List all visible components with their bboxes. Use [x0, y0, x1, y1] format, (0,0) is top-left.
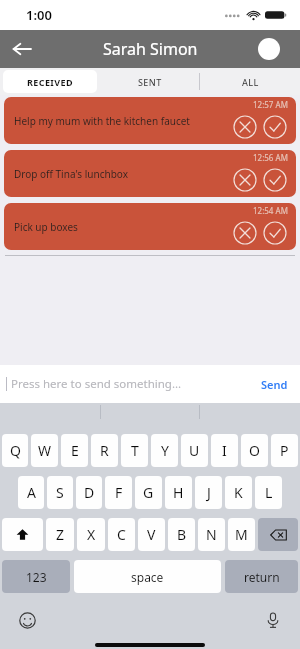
staticText: Q [10, 441, 21, 460]
staticText: B [177, 525, 187, 544]
staticText: C [117, 525, 126, 544]
staticText: ALL [242, 76, 259, 88]
staticText: T [131, 441, 139, 460]
button[interactable]: N [198, 518, 225, 551]
staticText: E [71, 441, 79, 460]
button[interactable]: Accept task [262, 167, 288, 193]
staticText: V [147, 525, 156, 544]
staticText: J [207, 483, 211, 502]
button[interactable]: Z [46, 518, 74, 551]
staticText: Sarah Simon [103, 38, 198, 60]
staticText: L [265, 483, 273, 502]
button[interactable]: O [241, 434, 268, 467]
button[interactable]: Decline task [232, 114, 258, 140]
button[interactable]: R [91, 434, 118, 467]
staticText: Z [56, 525, 65, 544]
staticText: 12:56 AM [253, 152, 288, 163]
staticText: Drop off Tina's lunchbox [14, 167, 128, 181]
button[interactable]: Backspace [258, 518, 298, 551]
button[interactable]: K [225, 476, 252, 509]
button[interactable]: L [255, 476, 282, 509]
button[interactable]: E [61, 434, 88, 467]
button[interactable]: return [225, 560, 298, 593]
button[interactable]: M [228, 518, 255, 551]
staticText: Press here to send something... [11, 376, 182, 392]
button[interactable]: H [165, 476, 192, 509]
button[interactable]: X [77, 518, 105, 551]
staticText: K [234, 483, 243, 502]
button[interactable]: SENT [100, 68, 200, 95]
button[interactable]: T [121, 434, 148, 467]
button[interactable]: Profile [258, 38, 280, 60]
button[interactable]: U [181, 434, 208, 467]
button[interactable]: 123 [2, 560, 70, 593]
button[interactable]: ALL [200, 68, 300, 95]
button[interactable]: Decline task [232, 167, 258, 193]
staticText: H [173, 483, 184, 502]
staticText: S [56, 483, 64, 502]
button[interactable]: G [135, 476, 162, 509]
button[interactable]: Press here to send something... [0, 365, 300, 403]
staticText: Y [161, 441, 169, 460]
staticText: M [235, 525, 248, 544]
button[interactable]: Emoji [14, 607, 40, 633]
button[interactable]: RECEIVED [3, 70, 97, 93]
staticText: Help my mum with the kitchen faucet [14, 114, 190, 128]
button[interactable]: Shift [2, 518, 43, 551]
staticText: D [84, 483, 95, 502]
staticText: R [100, 441, 109, 460]
button[interactable]: C [108, 518, 135, 551]
staticText: N [206, 525, 217, 544]
staticText: 12:54 AM [253, 205, 288, 216]
button[interactable]: P [271, 434, 298, 467]
button[interactable]: F [105, 476, 132, 509]
staticText: 1:00 [26, 6, 52, 24]
staticText: G [143, 483, 154, 502]
button[interactable]: S [47, 476, 73, 509]
button[interactable]: 12:56 AM [4, 150, 296, 197]
button[interactable]: space [74, 560, 221, 593]
staticText: W [38, 441, 52, 460]
staticText: Send [261, 377, 288, 392]
button[interactable]: A [18, 476, 44, 509]
staticText: Pick up boxes [14, 220, 78, 234]
staticText: RECEIVED [27, 76, 73, 88]
button[interactable]: Back [6, 33, 38, 65]
button[interactable]: W [31, 434, 58, 467]
staticText: return [244, 569, 280, 585]
staticText: 123 [26, 569, 47, 585]
button[interactable]: D [76, 476, 102, 509]
button[interactable]: Y [151, 434, 178, 467]
staticText: SENT [138, 76, 162, 88]
staticText: A [27, 483, 36, 502]
button[interactable]: V [138, 518, 165, 551]
staticText: space [131, 569, 164, 585]
staticText: O [249, 441, 260, 460]
button[interactable]: J [195, 476, 222, 509]
button[interactable]: Q [2, 434, 28, 467]
button[interactable]: 12:54 AM [4, 203, 296, 250]
button[interactable]: 12:57 AM [4, 97, 296, 144]
button[interactable]: Voice input [260, 607, 286, 633]
staticText: X [87, 525, 96, 544]
staticText: F [115, 483, 123, 502]
button[interactable]: Decline task [232, 220, 258, 246]
button[interactable]: Accept task [262, 114, 288, 140]
staticText: I [222, 441, 227, 460]
staticText: P [280, 441, 289, 460]
button[interactable]: B [168, 518, 195, 551]
staticText: 12:57 AM [253, 99, 288, 110]
button[interactable]: I [211, 434, 238, 467]
button[interactable]: Accept task [262, 220, 288, 246]
staticText: U [189, 441, 200, 460]
button[interactable]: Send [257, 373, 292, 396]
